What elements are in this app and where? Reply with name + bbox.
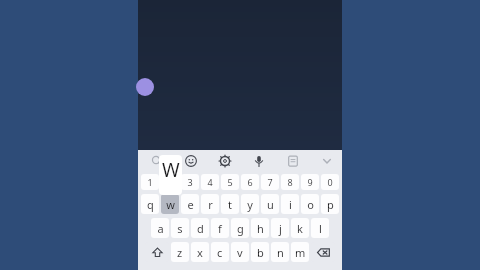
button[interactable]: d bbox=[191, 218, 209, 238]
button[interactable]: Shift bbox=[145, 242, 169, 262]
staticText: c bbox=[217, 245, 223, 260]
button[interactable]: t bbox=[221, 194, 239, 214]
staticText: f bbox=[218, 221, 222, 236]
staticText: b bbox=[257, 245, 264, 260]
staticText: a bbox=[157, 221, 164, 236]
staticText: e bbox=[187, 197, 194, 212]
staticText: v bbox=[237, 245, 243, 260]
staticText: g bbox=[237, 221, 244, 236]
button[interactable]: e bbox=[181, 194, 199, 214]
staticText: 5 bbox=[227, 176, 233, 188]
button[interactable]: u bbox=[261, 194, 279, 214]
staticText: 3 bbox=[187, 176, 193, 188]
staticText: l bbox=[319, 221, 322, 236]
staticText: 9 bbox=[307, 176, 313, 188]
button[interactable]: 8 bbox=[281, 174, 299, 190]
button[interactable]: b bbox=[251, 242, 269, 262]
staticText: 6 bbox=[247, 176, 253, 188]
staticText: n bbox=[277, 245, 284, 260]
button[interactable]: p bbox=[321, 194, 339, 214]
staticText: 4 bbox=[207, 176, 213, 188]
staticText: t bbox=[228, 197, 232, 212]
staticText: W bbox=[162, 157, 180, 183]
button[interactable]: 5 bbox=[221, 174, 239, 190]
button[interactable]: Hide keyboard bbox=[318, 152, 336, 170]
staticText: j bbox=[279, 221, 282, 236]
staticText: w bbox=[166, 197, 175, 212]
button[interactable]: Clipboard bbox=[284, 152, 302, 170]
button[interactable]: c bbox=[211, 242, 229, 262]
button[interactable]: Search bbox=[148, 152, 166, 170]
button[interactable]: r bbox=[201, 194, 219, 214]
staticText: 0 bbox=[327, 176, 333, 188]
button[interactable]: 1 bbox=[141, 174, 159, 190]
button[interactable]: Voice input bbox=[250, 152, 268, 170]
staticText: y bbox=[247, 197, 253, 212]
button[interactable]: y bbox=[241, 194, 259, 214]
button[interactable]: Backspace bbox=[311, 242, 335, 262]
button[interactable]: j bbox=[271, 218, 289, 238]
button[interactable]: 7 bbox=[261, 174, 279, 190]
staticText: d bbox=[197, 221, 204, 236]
button[interactable]: v bbox=[231, 242, 249, 262]
button[interactable]: m bbox=[291, 242, 309, 262]
button[interactable]: 0 bbox=[321, 174, 339, 190]
staticText: 7 bbox=[267, 176, 273, 188]
button[interactable]: n bbox=[271, 242, 289, 262]
staticText: 8 bbox=[287, 176, 293, 188]
button[interactable]: g bbox=[231, 218, 249, 238]
button[interactable]: 2 bbox=[161, 174, 179, 190]
button[interactable]: l bbox=[311, 218, 329, 238]
button[interactable]: i bbox=[281, 194, 299, 214]
button[interactable]: Settings bbox=[216, 152, 234, 170]
button[interactable]: Emoji bbox=[182, 152, 200, 170]
staticText: x bbox=[197, 245, 203, 260]
staticText: p bbox=[327, 197, 334, 212]
staticText: u bbox=[267, 197, 274, 212]
staticText: 1 bbox=[147, 176, 153, 188]
button[interactable]: 6 bbox=[241, 174, 259, 190]
staticText: s bbox=[177, 221, 183, 236]
button[interactable]: s bbox=[171, 218, 189, 238]
staticText: i bbox=[289, 197, 292, 212]
button[interactable]: w bbox=[161, 194, 179, 214]
staticText: q bbox=[147, 197, 154, 212]
button[interactable]: k bbox=[291, 218, 309, 238]
button[interactable]: x bbox=[191, 242, 209, 262]
staticText: z bbox=[177, 245, 183, 260]
button[interactable]: h bbox=[251, 218, 269, 238]
button[interactable]: z bbox=[171, 242, 189, 262]
button[interactable]: f bbox=[211, 218, 229, 238]
staticText: h bbox=[257, 221, 264, 236]
button[interactable]: 4 bbox=[201, 174, 219, 190]
staticText: m bbox=[295, 245, 306, 260]
button[interactable]: o bbox=[301, 194, 319, 214]
staticText: k bbox=[297, 221, 303, 236]
button[interactable]: q bbox=[141, 194, 159, 214]
staticText: o bbox=[307, 197, 314, 212]
staticText: 2 bbox=[167, 176, 173, 188]
button[interactable]: a bbox=[151, 218, 169, 238]
staticText: r bbox=[208, 197, 213, 212]
button[interactable]: 9 bbox=[301, 174, 319, 190]
button[interactable]: 3 bbox=[181, 174, 199, 190]
